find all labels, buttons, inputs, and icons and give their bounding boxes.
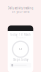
staticText: 72 — [18, 47, 22, 51]
staticText: Daily activity tracking — [7, 6, 33, 10]
button[interactable] — [10, 63, 31, 68]
staticText: on your wrist — [11, 10, 29, 14]
staticText: Steps today — [13, 58, 28, 61]
staticText: Today, 18 March — [10, 33, 31, 36]
